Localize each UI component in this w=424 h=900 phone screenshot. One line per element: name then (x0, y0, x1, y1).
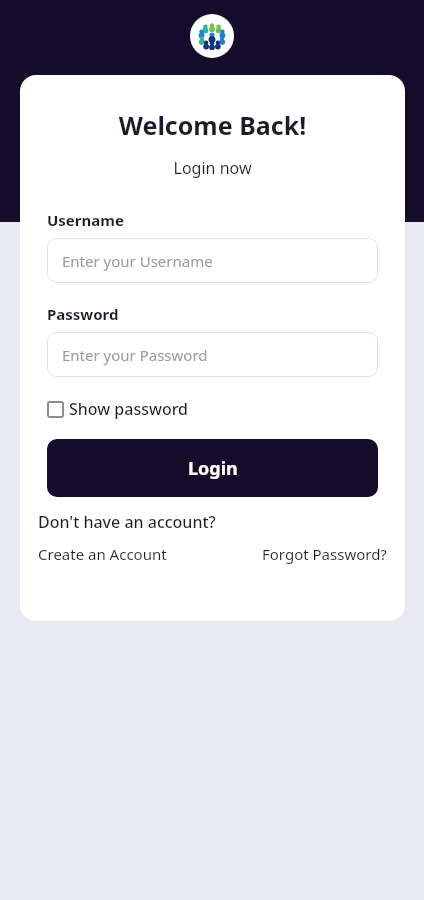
staticText: Create an Account (38, 544, 167, 564)
staticText: Don't have an account? (38, 511, 216, 533)
staticText: Show password (69, 398, 189, 420)
staticText: Forgot Password? (262, 544, 387, 564)
staticText: Enter your Username (62, 251, 213, 271)
button[interactable]: Enter your Username (47, 238, 378, 283)
staticText: Login now (20, 157, 405, 179)
staticText: Login (188, 456, 238, 481)
staticText: Password (47, 304, 119, 324)
staticText: Enter your Password (62, 345, 208, 365)
button[interactable]: Create an Account (38, 544, 167, 564)
other: App logo (190, 14, 234, 58)
button[interactable]: Login (47, 439, 378, 497)
button[interactable]: Forgot Password? (262, 544, 387, 564)
staticText: Username (47, 210, 124, 230)
button[interactable]: Enter your Password (47, 332, 378, 377)
staticText: Welcome Back! (20, 108, 405, 142)
button[interactable]: Show password (47, 396, 189, 422)
